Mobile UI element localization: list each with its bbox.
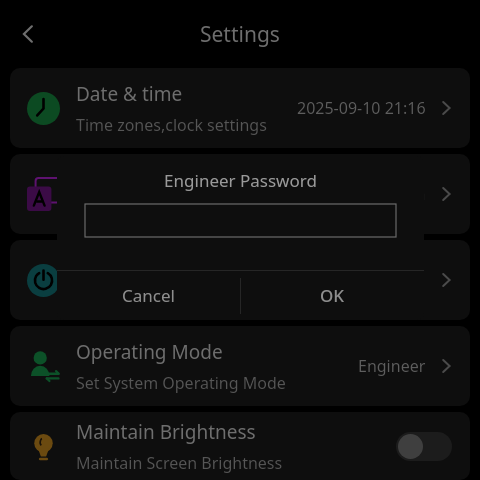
staticText: Restart the device xyxy=(76,286,211,308)
button[interactable]: Maintain Brightness xyxy=(10,412,470,480)
button[interactable]: OK xyxy=(240,271,424,320)
staticText: Time zones,clock settings xyxy=(76,114,267,136)
button[interactable]: Reboot xyxy=(10,240,470,320)
staticText: Maintain Brightness xyxy=(76,419,256,445)
staticText: Engineer xyxy=(358,355,426,377)
staticText: Reboot xyxy=(76,253,141,279)
button[interactable]: Language xyxy=(10,154,470,234)
staticText: Maintain Screen Brightness xyxy=(76,452,283,474)
staticText: Date & time xyxy=(76,81,183,107)
button[interactable]: Operating Mode xyxy=(10,326,470,406)
button[interactable] xyxy=(85,204,396,237)
staticText: Set System Language xyxy=(76,200,238,222)
button[interactable]: Maintain Brightness toggle xyxy=(396,432,452,461)
staticText: Settings xyxy=(200,20,280,49)
staticText: English xyxy=(371,183,426,205)
staticText: OK xyxy=(320,284,345,307)
button[interactable]: Cancel xyxy=(57,271,240,320)
staticText: Operating Mode xyxy=(76,339,223,365)
staticText: 2025-09-10 21:16 xyxy=(297,97,426,119)
button[interactable]: Date & time xyxy=(10,68,470,148)
button[interactable]: Back xyxy=(4,10,52,58)
staticText: Cancel xyxy=(122,284,175,307)
staticText: Engineer Password xyxy=(57,169,424,192)
staticText: Set System Operating Mode xyxy=(76,372,286,394)
